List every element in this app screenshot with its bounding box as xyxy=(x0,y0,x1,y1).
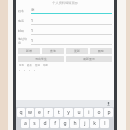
button[interactable]: i xyxy=(84,108,93,117)
button[interactable]: 更新 xyxy=(66,48,88,54)
staticText: a xyxy=(24,120,27,127)
staticText: p xyxy=(107,109,111,116)
button[interactable]: l xyxy=(100,119,109,128)
staticText: g xyxy=(63,120,67,127)
staticText: k xyxy=(93,120,96,127)
staticText: f xyxy=(54,120,56,127)
staticText: 1 xyxy=(31,18,33,23)
button[interactable]: 删除 xyxy=(90,48,112,54)
staticText: u xyxy=(77,109,81,116)
staticText: s xyxy=(33,120,36,127)
button[interactable]: j xyxy=(80,119,89,128)
staticText: 1 xyxy=(34,68,36,71)
staticText: 删除 xyxy=(98,49,104,53)
staticText: 姓名 xyxy=(27,64,32,67)
button[interactable]: q xyxy=(17,108,25,117)
staticText: i xyxy=(88,109,90,116)
button[interactable]: o xyxy=(94,108,103,117)
staticText: 电话 xyxy=(18,19,24,23)
staticText: h xyxy=(73,120,77,127)
button[interactable]: d xyxy=(40,119,49,128)
button[interactable]: 电话 xyxy=(16,16,114,26)
button[interactable]: 新增 xyxy=(18,48,40,54)
staticText: t xyxy=(58,109,60,116)
button[interactable]: t xyxy=(54,108,63,117)
button[interactable]: a xyxy=(21,119,29,128)
button[interactable]: w xyxy=(26,108,34,117)
staticText: 姓名 xyxy=(18,9,24,13)
button[interactable]: 邮箱 xyxy=(16,26,114,36)
staticText: 1 xyxy=(29,68,31,71)
staticText: 1 xyxy=(31,28,33,33)
button[interactable]: r xyxy=(44,108,53,117)
staticText: 学号 xyxy=(19,64,24,67)
staticText: d xyxy=(43,120,47,127)
staticText: 年龄 xyxy=(43,64,48,67)
staticText: 性别 xyxy=(35,64,40,67)
staticText: r xyxy=(47,109,50,116)
staticText: e xyxy=(38,109,41,116)
staticText: 地址信息 xyxy=(18,37,29,45)
staticText: 导出学生 xyxy=(35,57,47,61)
staticText: l xyxy=(104,120,106,127)
button[interactable]: y xyxy=(64,108,73,117)
button[interactable]: p xyxy=(104,108,113,117)
staticText: 刷新显示 xyxy=(83,57,95,61)
button[interactable]: s xyxy=(30,119,39,128)
staticText: 查询 xyxy=(50,49,56,53)
staticText: o xyxy=(97,109,101,116)
staticText: 1 xyxy=(19,68,21,71)
staticText: 个人资料编辑页面 xyxy=(52,1,78,5)
button[interactable]: u xyxy=(74,108,83,117)
button[interactable]: 地址信息 xyxy=(16,36,114,46)
staticText: q xyxy=(19,109,23,116)
staticText: w xyxy=(28,109,32,116)
staticText: 1 xyxy=(31,38,33,43)
button[interactable]: k xyxy=(90,119,99,128)
staticText: 新增 xyxy=(26,49,32,53)
button[interactable]: h xyxy=(70,119,79,128)
button[interactable]: 姓名 xyxy=(16,6,114,16)
staticText: 邮箱 xyxy=(18,29,24,33)
staticText: j xyxy=(84,120,86,127)
button[interactable]: g xyxy=(60,119,69,128)
button[interactable]: 刷新显示 xyxy=(66,56,112,62)
staticText: y xyxy=(67,109,70,116)
staticText: 张 xyxy=(31,8,35,12)
staticText: 更新 xyxy=(74,49,80,53)
button[interactable]: f xyxy=(50,119,59,128)
staticText: 1 xyxy=(24,68,26,71)
button[interactable]: Voice input xyxy=(106,101,111,106)
button[interactable]: e xyxy=(35,108,43,117)
button[interactable]: 导出学生 xyxy=(18,56,64,62)
button[interactable]: 查询 xyxy=(42,48,64,54)
